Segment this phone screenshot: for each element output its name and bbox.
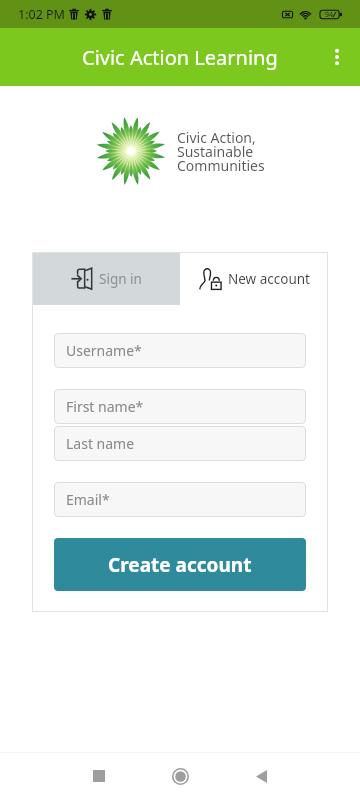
staticText: 94 [325, 10, 334, 20]
button[interactable]: More options [314, 28, 360, 86]
button[interactable]: New account [180, 252, 328, 305]
staticText: First name* [66, 397, 144, 416]
staticText: Email* [66, 490, 110, 509]
staticText: Civic Action Learning [82, 44, 278, 71]
button[interactable]: Last name [54, 426, 306, 461]
staticText: Create account [108, 552, 252, 578]
button[interactable]: Back [221, 752, 302, 800]
staticText: 1:02 PM [18, 6, 65, 23]
button[interactable]: Home [140, 752, 221, 800]
staticText: Username* [66, 341, 142, 360]
staticText: Civic Action, Sustainable Communities [177, 128, 265, 175]
button[interactable]: Username* [54, 333, 306, 368]
button[interactable]: First name* [54, 389, 306, 424]
button[interactable]: Sign in [32, 252, 180, 305]
staticText: Sign in [99, 270, 142, 288]
button[interactable]: Create account [54, 538, 306, 591]
staticText: Last name [66, 434, 135, 453]
button[interactable]: Email* [54, 482, 306, 517]
button[interactable]: Recent apps [58, 752, 140, 800]
staticText: New account [228, 270, 310, 288]
